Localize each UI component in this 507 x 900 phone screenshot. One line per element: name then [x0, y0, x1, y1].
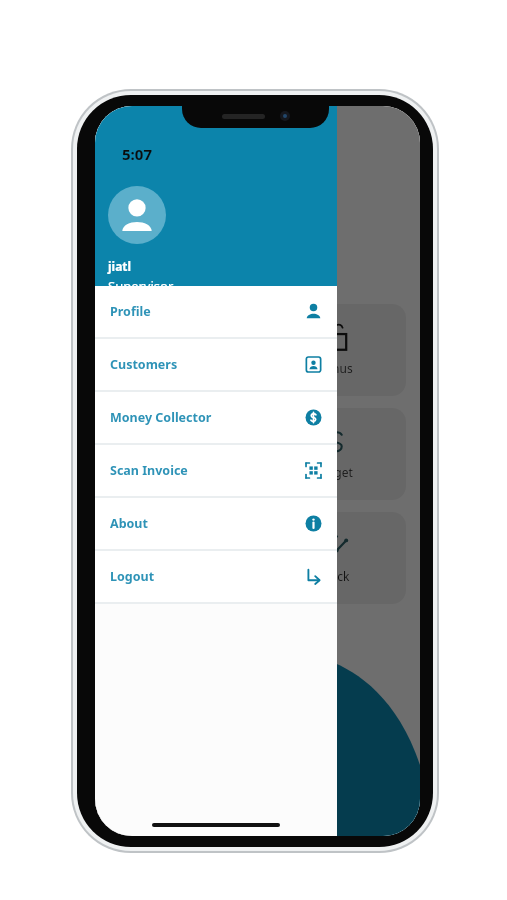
staticText: Supervisor	[108, 277, 174, 286]
other: Scan Invoice	[305, 462, 322, 479]
button[interactable]: Promotion	[109, 512, 251, 604]
staticText: Target	[317, 464, 353, 480]
staticText: Promotion	[150, 568, 210, 584]
staticText: Sales Report	[111, 157, 229, 183]
staticText: Money Collector	[110, 409, 305, 426]
staticText: Profile	[110, 303, 305, 320]
staticText: Bonus	[317, 360, 353, 376]
staticText: Scan Invoice	[110, 462, 305, 479]
staticText: jiatl	[108, 258, 132, 274]
button[interactable]: Stock	[263, 512, 406, 604]
staticText: About	[110, 515, 305, 532]
button[interactable]: Customers	[95, 339, 337, 390]
staticText: 4	[177, 330, 184, 346]
other: Profile	[305, 303, 322, 320]
button[interactable]: Bonus	[263, 304, 406, 396]
staticText: Expense	[156, 360, 204, 376]
other: Logout	[305, 568, 322, 585]
button[interactable]: Target	[263, 408, 406, 500]
staticText: Expense	[156, 464, 204, 480]
other: About	[305, 515, 322, 532]
button[interactable]: Expense	[109, 408, 251, 500]
staticText: Stock	[319, 568, 350, 584]
button[interactable]: Profile	[95, 286, 337, 337]
button[interactable]: About	[95, 498, 337, 549]
staticText: Customers	[110, 356, 305, 373]
other: Customers	[305, 356, 322, 373]
other: Money Collector	[305, 409, 322, 426]
staticText: Logout	[110, 568, 305, 585]
button[interactable]: 4	[109, 304, 251, 396]
button[interactable]: Money Collector	[95, 392, 337, 443]
button[interactable]: Logout	[95, 551, 337, 602]
staticText: 5:07	[122, 144, 152, 164]
button[interactable]: Scan Invoice	[95, 445, 337, 496]
